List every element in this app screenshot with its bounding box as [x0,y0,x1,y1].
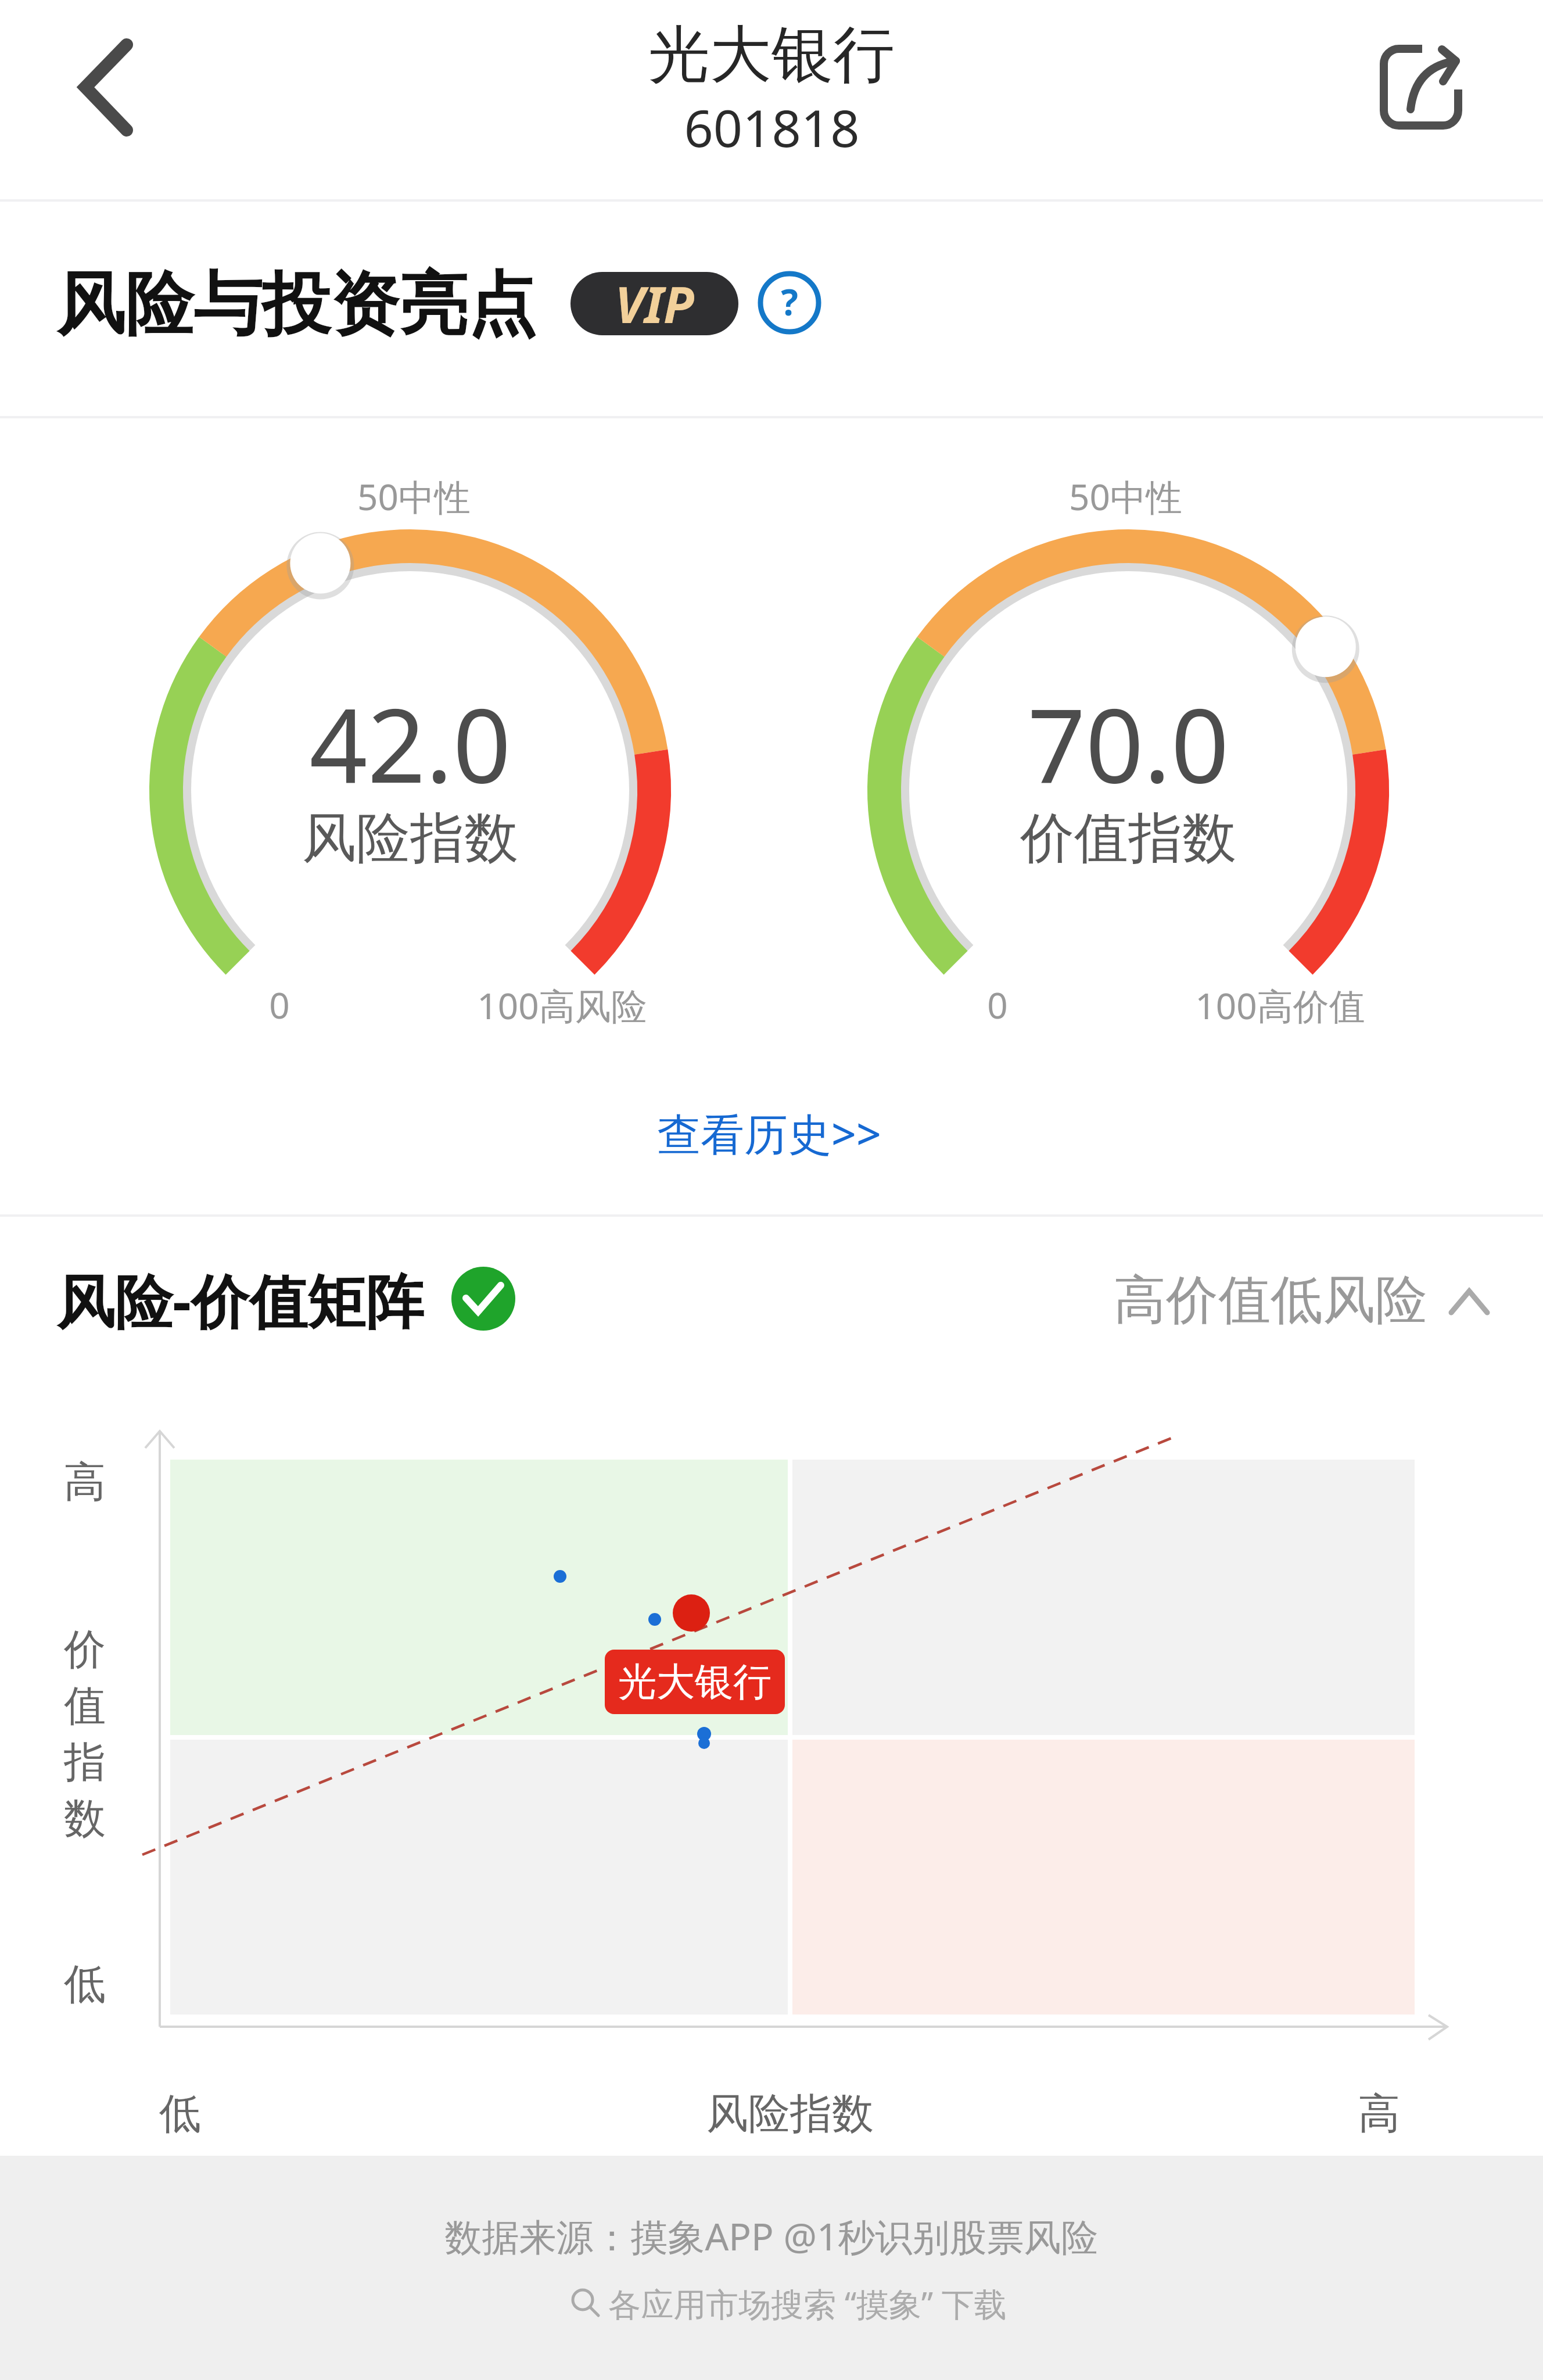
staticText: 值 [64,1680,106,1733]
staticText: 低 [159,2088,201,2141]
staticText: 数 [64,1793,106,1845]
staticText: 各应用市场搜索 “摸象” 下载 [608,2281,1007,2325]
staticText: 价值指数 [1020,804,1236,872]
staticText: 高价值低风险 [1114,1267,1427,1333]
button[interactable]: 查看历史>> [363,1089,1176,1177]
staticText: 价 [64,1623,106,1676]
staticText: ? [781,277,798,326]
button[interactable]: 高价值低风险 [1096,1248,1445,1352]
staticText: 0 [269,980,290,1029]
staticText: 风险指数 [302,804,518,872]
staticText: 光大银行 [648,16,895,94]
staticText: 601818 [684,92,860,162]
staticText: 70.0 [1027,674,1229,812]
staticText: 风险指数 [706,2088,874,2141]
staticText: 50中性 [357,472,471,521]
button[interactable] [58,23,163,151]
staticText: 数据来源：摸象APP @1秒识别股票风险 [444,2211,1099,2261]
staticText: 高 [64,1456,106,1509]
staticText: 指 [64,1736,106,1789]
staticText: VIP [615,270,694,338]
staticText: 0 [987,980,1008,1029]
staticText: 50中性 [1069,472,1182,521]
staticText: 低 [64,1958,106,2011]
button[interactable] [758,271,821,334]
button[interactable] [1371,29,1476,139]
staticText: 100高价值 [1195,981,1365,1030]
staticText: 光大银行 [618,1658,771,1706]
staticText: 风险-价值矩阵 [56,1260,424,1340]
staticText: 查看历史>> [657,1103,881,1163]
staticText: 风险与投资亮点 [56,261,536,348]
staticText: 42.0 [309,674,511,812]
staticText: 高 [1358,2088,1400,2141]
staticText: 100高风险 [477,981,647,1030]
